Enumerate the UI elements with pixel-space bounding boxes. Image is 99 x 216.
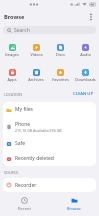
- staticText: Browse: [67, 206, 81, 211]
- button[interactable]: Phone: [3, 117, 96, 136]
- button[interactable]: Recorder: [3, 178, 96, 192]
- staticText: 215.16 GB Available/256 GB: [15, 128, 62, 133]
- staticText: Images: [5, 52, 19, 57]
- button[interactable]: Archives: [24, 69, 48, 82]
- staticText: Archives: [28, 77, 44, 82]
- button[interactable]: CLEAN UP: [73, 91, 93, 97]
- staticText: My files: [15, 106, 33, 113]
- staticText: Docs: [56, 52, 65, 57]
- staticText: Apps: [7, 77, 17, 82]
- button[interactable]: Videos: [24, 44, 48, 57]
- button[interactable]: Favorites: [48, 69, 73, 82]
- staticText: Phone: [15, 121, 31, 128]
- button[interactable]: More options: [85, 11, 96, 22]
- button[interactable]: Recent: [0, 192, 49, 216]
- staticText: Recorder: [15, 182, 37, 189]
- button[interactable]: Recently deleted: [3, 151, 96, 166]
- staticText: Favorites: [52, 77, 69, 82]
- staticText: SOURCE: [4, 170, 19, 175]
- button[interactable]: My files: [3, 102, 96, 117]
- staticText: Recent: [18, 206, 31, 211]
- button[interactable]: Search: [3, 26, 96, 34]
- staticText: LOCATION: [4, 92, 23, 97]
- button[interactable]: Apps: [0, 69, 24, 82]
- button[interactable]: Docs: [48, 44, 73, 57]
- staticText: Videos: [30, 52, 43, 57]
- button[interactable]: Images: [0, 44, 24, 57]
- staticText: Browse: [4, 13, 25, 21]
- staticText: CLEAN UP: [73, 91, 93, 97]
- staticText: Downloads: [75, 77, 96, 82]
- staticText: Search: [14, 27, 30, 34]
- staticText: Audio: [80, 52, 91, 57]
- staticText: Recently deleted: [15, 155, 54, 162]
- staticText: Safe: [15, 140, 26, 147]
- button[interactable]: Browse: [49, 192, 99, 216]
- button[interactable]: Audio: [73, 44, 98, 57]
- button[interactable]: Downloads: [73, 69, 98, 82]
- button[interactable]: Safe: [3, 136, 96, 151]
